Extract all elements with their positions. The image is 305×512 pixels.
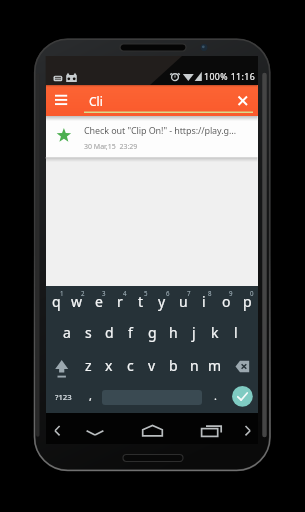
staticText: 30 Mar,15 23:29 bbox=[84, 142, 138, 152]
staticText: k bbox=[211, 323, 219, 342]
button[interactable] bbox=[99, 318, 120, 350]
staticText: o bbox=[222, 292, 231, 311]
button[interactable] bbox=[80, 382, 100, 411]
staticText: 3 bbox=[102, 289, 106, 297]
staticText: ?123 bbox=[55, 392, 72, 403]
staticText: 0 bbox=[250, 289, 254, 297]
button[interactable] bbox=[205, 382, 225, 411]
staticText: 7 bbox=[187, 289, 191, 297]
button[interactable] bbox=[141, 318, 162, 350]
staticText: y bbox=[158, 292, 166, 311]
button[interactable] bbox=[67, 286, 88, 318]
staticText: j bbox=[192, 323, 196, 342]
staticText: Check out "Clip On!" - https://play.g… bbox=[84, 124, 236, 136]
button[interactable] bbox=[49, 422, 65, 440]
staticText: 9 bbox=[229, 289, 233, 297]
button[interactable] bbox=[46, 286, 67, 318]
button[interactable] bbox=[120, 350, 141, 382]
staticText: d bbox=[105, 323, 114, 342]
staticText: 8 bbox=[208, 289, 212, 297]
button[interactable] bbox=[215, 286, 236, 318]
button[interactable] bbox=[226, 350, 257, 382]
staticText: 2 bbox=[81, 289, 85, 297]
button[interactable] bbox=[162, 318, 183, 350]
staticText: s bbox=[85, 323, 92, 342]
staticText: h bbox=[169, 323, 178, 342]
staticText: x bbox=[105, 356, 113, 375]
button[interactable] bbox=[109, 286, 130, 318]
staticText: v bbox=[148, 356, 156, 375]
button[interactable] bbox=[173, 286, 194, 318]
staticText: 100% 11:16 bbox=[204, 71, 256, 83]
button[interactable] bbox=[232, 386, 253, 407]
staticText: r bbox=[117, 292, 123, 311]
staticText: l bbox=[234, 323, 238, 342]
button[interactable] bbox=[233, 90, 253, 110]
staticText: 5 bbox=[144, 289, 148, 297]
staticText: n bbox=[190, 356, 199, 375]
button[interactable] bbox=[183, 318, 204, 350]
staticText: f bbox=[128, 323, 133, 342]
button[interactable] bbox=[226, 318, 247, 350]
button[interactable] bbox=[162, 350, 183, 382]
staticText: 4 bbox=[123, 289, 127, 297]
staticText: u bbox=[179, 292, 188, 311]
button[interactable] bbox=[99, 350, 120, 382]
staticText: c bbox=[127, 356, 134, 375]
button[interactable] bbox=[77, 350, 98, 382]
staticText: . bbox=[214, 388, 217, 403]
staticText: m bbox=[208, 356, 222, 375]
button[interactable] bbox=[120, 318, 141, 350]
button[interactable] bbox=[56, 318, 77, 350]
button[interactable] bbox=[204, 350, 225, 382]
staticText: i bbox=[202, 292, 206, 311]
staticText: 6 bbox=[166, 289, 170, 297]
staticText: q bbox=[52, 292, 61, 311]
staticText: b bbox=[169, 356, 178, 375]
staticText: a bbox=[63, 323, 71, 342]
button[interactable] bbox=[46, 350, 78, 382]
button[interactable] bbox=[183, 350, 204, 382]
staticText: z bbox=[85, 356, 92, 375]
button[interactable] bbox=[48, 382, 78, 411]
button[interactable] bbox=[140, 421, 165, 441]
button[interactable] bbox=[152, 286, 173, 318]
button[interactable] bbox=[77, 318, 98, 350]
button[interactable] bbox=[236, 286, 257, 318]
button[interactable] bbox=[194, 286, 215, 318]
staticText: g bbox=[148, 323, 157, 342]
button[interactable] bbox=[130, 286, 151, 318]
staticText: p bbox=[243, 292, 252, 311]
button[interactable] bbox=[141, 350, 162, 382]
staticText: e bbox=[95, 292, 103, 311]
staticText: , bbox=[89, 388, 92, 403]
button[interactable]: Check out "Clip On!" - https://play.g… bbox=[46, 116, 258, 157]
staticText: 1 bbox=[60, 289, 64, 297]
staticText: t bbox=[138, 292, 144, 311]
staticText: w bbox=[71, 292, 83, 311]
staticText: Cli bbox=[89, 93, 103, 109]
button[interactable] bbox=[241, 422, 257, 440]
button[interactable] bbox=[51, 91, 71, 110]
button[interactable] bbox=[85, 423, 105, 441]
button[interactable] bbox=[204, 318, 225, 350]
button[interactable]: Cli bbox=[84, 88, 229, 114]
button[interactable] bbox=[199, 421, 224, 441]
button[interactable] bbox=[88, 286, 109, 318]
